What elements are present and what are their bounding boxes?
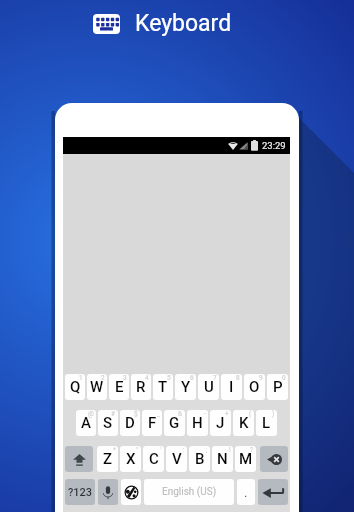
button[interactable]: English (US) bbox=[144, 479, 234, 505]
staticText: 6 bbox=[190, 374, 194, 382]
staticText: Q bbox=[70, 378, 81, 396]
staticText: X bbox=[126, 450, 136, 468]
staticText: I bbox=[229, 378, 234, 396]
button[interactable]: E bbox=[109, 374, 129, 400]
button[interactable]: Voice input bbox=[98, 479, 118, 505]
button[interactable]: Shift bbox=[65, 446, 93, 472]
button[interactable]: W bbox=[87, 374, 107, 400]
button[interactable]: H bbox=[187, 410, 208, 436]
staticText: A bbox=[81, 414, 91, 432]
button[interactable]: Y bbox=[175, 374, 196, 400]
staticText: Z bbox=[103, 450, 113, 468]
button[interactable]: S bbox=[98, 410, 118, 436]
staticText: K bbox=[239, 414, 249, 432]
staticText: M bbox=[239, 450, 253, 468]
staticText: G bbox=[169, 414, 180, 432]
staticText: R bbox=[136, 378, 146, 396]
staticText: D bbox=[125, 414, 135, 432]
staticText: _ bbox=[157, 410, 160, 418]
staticText: B bbox=[195, 450, 205, 468]
button[interactable]: Enter bbox=[258, 479, 288, 505]
staticText: English (US) bbox=[162, 486, 217, 498]
staticText: P bbox=[273, 378, 283, 396]
button[interactable]: L bbox=[256, 410, 277, 436]
button[interactable]: D bbox=[120, 410, 140, 436]
staticText: ? bbox=[250, 446, 254, 454]
staticText: Y bbox=[181, 378, 191, 396]
staticText: ' bbox=[160, 446, 162, 454]
button[interactable]: C bbox=[143, 446, 164, 472]
other: Delete bbox=[267, 454, 282, 465]
other: Enter bbox=[262, 487, 284, 498]
staticText: C bbox=[149, 450, 159, 468]
button[interactable]: F bbox=[142, 410, 162, 436]
staticText: 0 bbox=[282, 374, 286, 382]
staticText: ; bbox=[206, 446, 208, 454]
staticText: : bbox=[183, 446, 185, 454]
staticText: 8 bbox=[236, 374, 240, 382]
staticText: S bbox=[103, 414, 113, 432]
staticText: N bbox=[217, 450, 228, 468]
staticText: V bbox=[172, 450, 182, 468]
staticText: E bbox=[115, 378, 124, 396]
staticText: * bbox=[113, 446, 116, 454]
staticText: 7 bbox=[213, 374, 217, 382]
staticText: Keyboard bbox=[135, 10, 232, 37]
staticText: 9 bbox=[259, 374, 263, 382]
staticText: 4 bbox=[145, 374, 149, 382]
staticText: ) bbox=[272, 410, 275, 418]
staticText: T bbox=[158, 378, 168, 396]
button[interactable]: O bbox=[244, 374, 265, 400]
staticText: F bbox=[148, 414, 157, 432]
button[interactable]: P bbox=[267, 374, 288, 400]
button[interactable]: Z bbox=[97, 446, 118, 472]
other: Shift bbox=[72, 452, 87, 467]
staticText: - bbox=[204, 410, 206, 418]
button[interactable]: K bbox=[233, 410, 254, 436]
staticText: $ bbox=[134, 410, 138, 418]
staticText: 3 bbox=[123, 374, 127, 382]
staticText: + bbox=[225, 410, 229, 418]
staticText: ?123 bbox=[68, 486, 93, 499]
staticText: J bbox=[216, 414, 225, 432]
staticText: U bbox=[204, 378, 214, 396]
button[interactable]: Q bbox=[65, 374, 85, 400]
button[interactable]: V bbox=[166, 446, 187, 472]
button[interactable]: Switch language bbox=[121, 479, 141, 505]
staticText: 1 bbox=[79, 374, 83, 382]
staticText: ! bbox=[229, 446, 231, 454]
button[interactable]: ?123 bbox=[65, 479, 95, 505]
staticText: @ bbox=[88, 410, 94, 418]
staticText: # bbox=[111, 410, 116, 418]
staticText: H bbox=[192, 414, 203, 432]
button[interactable]: G bbox=[164, 410, 185, 436]
button[interactable]: J bbox=[210, 410, 231, 436]
staticText: W bbox=[90, 378, 104, 396]
staticText: " bbox=[136, 446, 139, 454]
button[interactable]: N bbox=[212, 446, 233, 472]
button[interactable]: Delete bbox=[260, 446, 288, 472]
staticText: L bbox=[262, 414, 271, 432]
button[interactable]: R bbox=[131, 374, 151, 400]
staticText: 23:29 bbox=[262, 140, 286, 151]
staticText: ( bbox=[249, 410, 252, 418]
button[interactable]: X bbox=[120, 446, 141, 472]
button[interactable]: B bbox=[189, 446, 210, 472]
staticText: . bbox=[244, 485, 248, 500]
staticText: O bbox=[249, 378, 260, 396]
button[interactable]: T bbox=[153, 374, 173, 400]
button[interactable]: M bbox=[235, 446, 256, 472]
staticText: 2 bbox=[101, 374, 105, 382]
button[interactable]: U bbox=[198, 374, 219, 400]
other: Voice input bbox=[103, 485, 113, 500]
staticText: 5 bbox=[167, 374, 171, 382]
button[interactable]: A bbox=[76, 410, 96, 436]
staticText: & bbox=[178, 410, 183, 418]
button[interactable]: I bbox=[221, 374, 242, 400]
button[interactable]: . bbox=[237, 479, 255, 505]
